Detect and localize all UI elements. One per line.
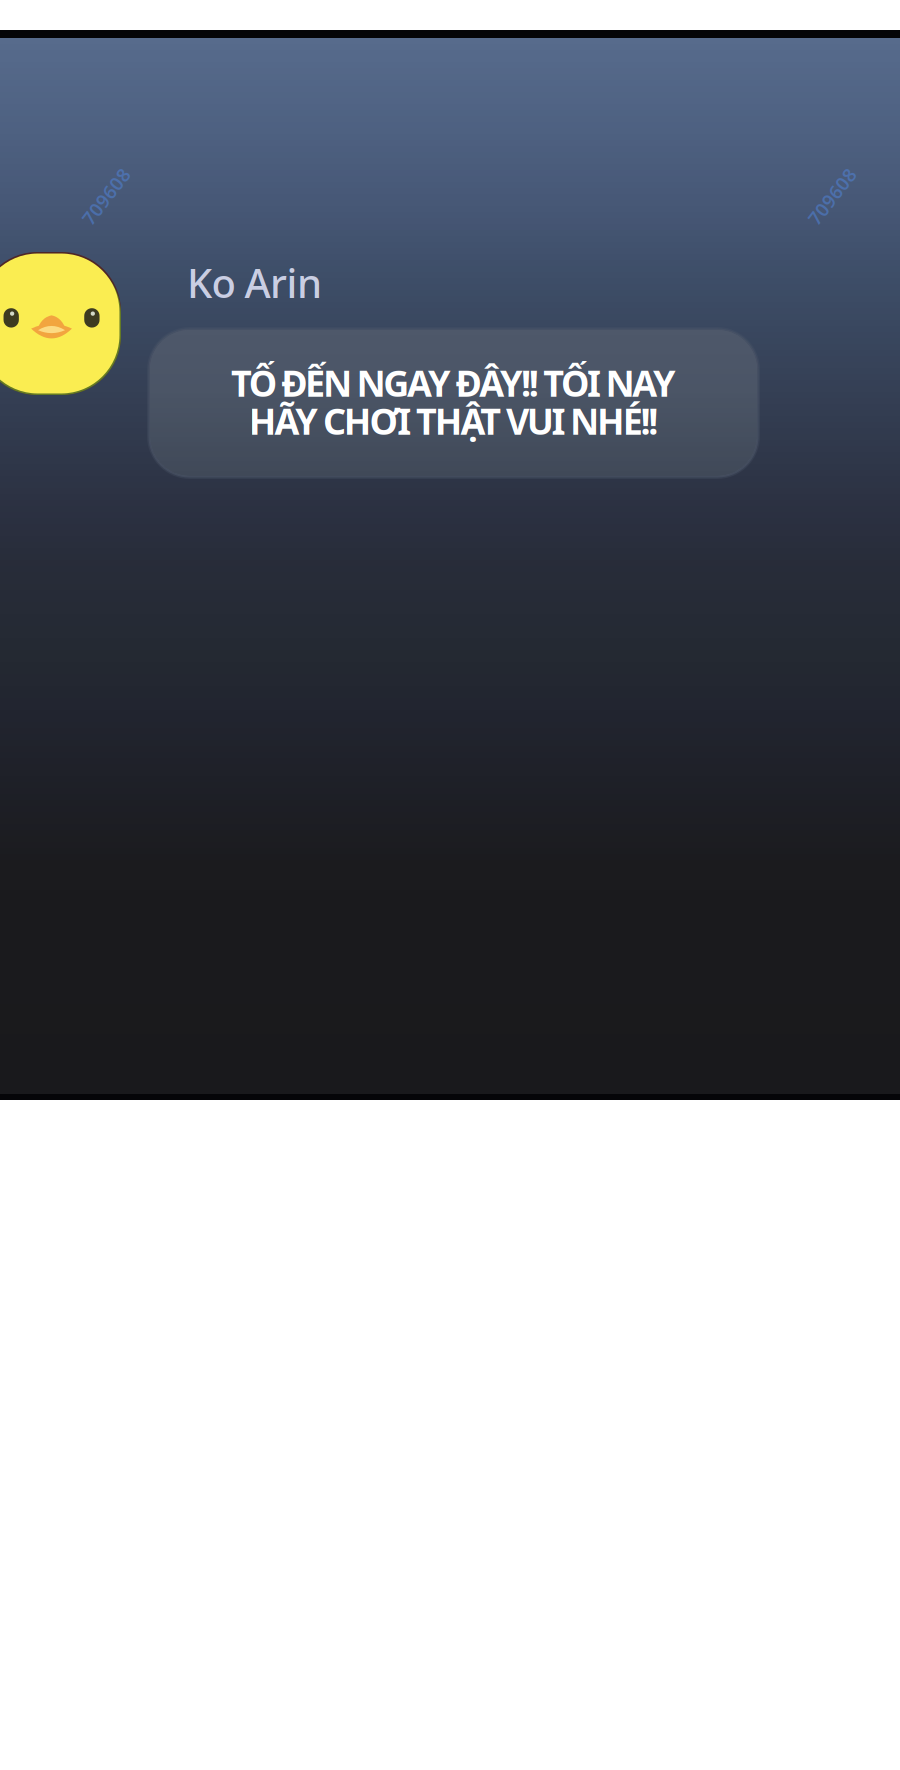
staticText: Ko Arin	[187, 256, 322, 309]
staticText: TỐ ĐẾN NGAY ĐÂY!! TỐI NAY	[231, 359, 676, 407]
staticText: HÃY CHƠI THẬT VUI NHÉ!!	[249, 397, 658, 445]
staticText: 709608	[799, 184, 865, 209]
button[interactable]: Comic panel — Ko Arin: TỐ ĐẾN NGAY ĐÂY!!…	[0, 30, 900, 1100]
staticText: 709608	[73, 184, 139, 209]
